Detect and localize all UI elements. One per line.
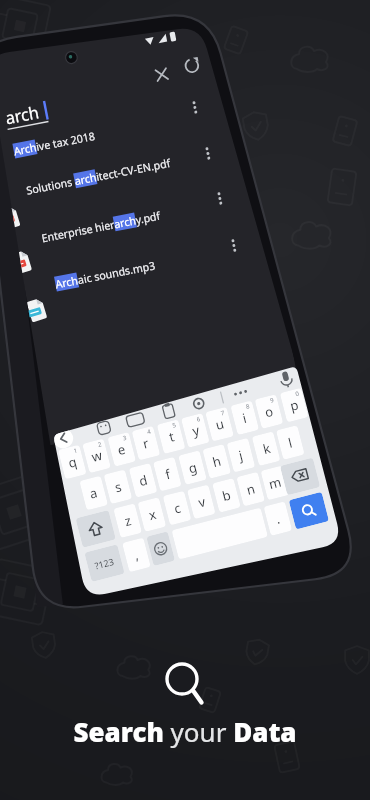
staticText: Archaic sounds.mp3 (54, 257, 157, 291)
staticText: r (141, 434, 151, 453)
button[interactable]: p (280, 388, 308, 422)
button[interactable]: m (260, 465, 289, 500)
button[interactable]: l (276, 425, 305, 460)
button[interactable]: Archaic sounds.mp3 (51, 254, 160, 295)
button[interactable]: r (131, 426, 160, 460)
button[interactable]: c (163, 491, 191, 525)
staticText: e (116, 440, 128, 459)
button[interactable]: u (205, 407, 234, 442)
staticText: a (88, 483, 100, 503)
button[interactable] (280, 458, 320, 495)
button[interactable]: Enterprise hierarchy.pdf (37, 204, 165, 249)
button[interactable]: k (252, 431, 280, 466)
staticText: u (213, 414, 227, 434)
staticText: 3 (122, 434, 128, 442)
staticText: 6 (196, 415, 202, 424)
button[interactable] (75, 510, 116, 548)
staticText: q (66, 452, 78, 472)
staticText: h (211, 451, 224, 471)
button[interactable]: q (58, 445, 87, 479)
button[interactable]: s (103, 469, 132, 504)
staticText: t (167, 427, 176, 446)
staticText: w (89, 445, 105, 466)
button[interactable]: Solutions architect-CV-EN.pdf (21, 151, 175, 201)
staticText: d (137, 470, 149, 490)
button[interactable]: j (226, 438, 255, 473)
staticText: , (132, 546, 141, 564)
button[interactable]: h (202, 444, 231, 479)
staticText: 8 (245, 402, 251, 411)
button[interactable]: y (181, 413, 210, 448)
staticText: v (196, 492, 207, 511)
button[interactable]: e (107, 432, 136, 467)
staticText: m (267, 472, 284, 493)
button[interactable]: v (187, 484, 216, 519)
button[interactable] (146, 531, 175, 566)
button[interactable]: t (157, 419, 185, 454)
staticText: f (163, 464, 172, 483)
staticText: b (220, 486, 233, 505)
button[interactable] (171, 507, 268, 560)
staticText: s (113, 477, 124, 496)
button[interactable]: n (236, 472, 265, 506)
button[interactable]: ?123 (84, 544, 125, 582)
button[interactable] (289, 492, 329, 530)
staticText: Search your Data (0, 714, 370, 749)
button[interactable]: f (153, 457, 182, 491)
button[interactable]: a (79, 476, 108, 510)
button[interactable]: Archive tax 2018 (9, 124, 99, 162)
staticText: z (122, 511, 134, 530)
staticText: y (190, 421, 201, 440)
button[interactable]: b (212, 478, 241, 513)
staticText: 1 (73, 446, 79, 455)
staticText: x (147, 505, 158, 524)
staticText: Solutions architect-CV-EN.pdf (25, 155, 171, 198)
staticText: 7 (220, 409, 226, 417)
staticText: g (186, 458, 199, 477)
staticText: j (237, 446, 245, 464)
staticText: ?123 (93, 555, 116, 571)
staticText: Archive tax 2018 (12, 128, 96, 158)
staticText: c (172, 498, 183, 517)
button[interactable]: , (122, 537, 151, 572)
button[interactable]: d (129, 463, 157, 498)
button[interactable]: arch (3, 100, 41, 129)
staticText: 0 (294, 389, 300, 398)
button[interactable]: g (178, 450, 207, 485)
staticText: 2 (97, 440, 103, 449)
button[interactable]: . (263, 501, 292, 536)
staticText: i (240, 408, 249, 427)
staticText: 9 (269, 396, 275, 405)
staticText: n (244, 479, 258, 499)
staticText: p (288, 395, 300, 415)
staticText: k (261, 439, 272, 458)
staticText: o (263, 402, 275, 421)
staticText: 5 (171, 421, 177, 430)
button[interactable]: z (113, 503, 142, 538)
button[interactable]: x (137, 497, 166, 532)
staticText: Enterprise hierarchy.pdf (40, 208, 162, 245)
button[interactable]: i (230, 400, 259, 435)
staticText: . (274, 509, 282, 528)
staticText: 4 (146, 427, 152, 436)
staticText: l (286, 433, 294, 452)
button[interactable]: w (82, 438, 111, 473)
button[interactable]: o (254, 394, 283, 429)
